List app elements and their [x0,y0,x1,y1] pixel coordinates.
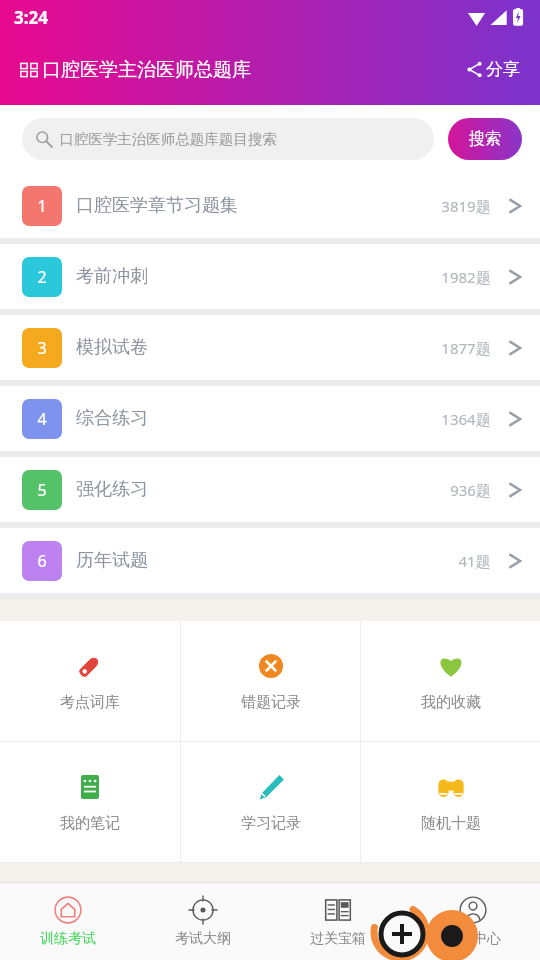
button[interactable]: 我的收藏 [361,621,540,741]
button[interactable]: 错题记录 [181,621,360,741]
button[interactable]: 3 [0,315,540,380]
staticText: 口腔医学主治医师总题库题目搜索 [59,130,277,148]
button[interactable]: 我的笔记 [0,742,180,862]
staticText: 1877题 [441,338,491,358]
staticText: 1982题 [441,267,491,287]
button[interactable]: 考点词库 [0,621,180,741]
staticText: 3:24 [14,6,48,29]
staticText: 错题记录 [241,693,301,712]
staticText: 训练考试 [40,930,96,948]
button[interactable]: 分享 [462,53,524,86]
staticText: 过关宝箱 [310,930,366,948]
button[interactable]: 6 [0,528,540,593]
staticText: 936题 [450,480,491,500]
staticText: 3 [37,337,47,359]
staticText: 4 [37,408,47,430]
staticText: 考前冲刺 [76,265,148,288]
staticText: 用户中心 [445,930,501,948]
button[interactable]: 1 [0,173,540,238]
button[interactable]: 随机十题 [361,742,540,862]
staticText: 6 [37,550,47,572]
other: 进入 [509,266,522,288]
button[interactable]: 5 [0,457,540,522]
other: 进入 [509,337,522,359]
button[interactable]: 用户中心 [405,883,540,960]
staticText: 模拟试卷 [76,336,148,359]
staticText: 口腔医学主治医师总题库 [42,58,251,82]
staticText: 学习记录 [241,814,301,833]
button[interactable]: 学习记录 [181,742,360,862]
staticText: 3819题 [441,196,491,216]
button[interactable]: 4 [0,386,540,451]
button[interactable]: 训练考试 [0,883,135,960]
staticText: 5 [37,479,47,501]
button[interactable]: 搜索 [448,118,522,160]
staticText: 考点词库 [60,693,120,712]
staticText: 历年试题 [76,549,148,572]
other: 进入 [509,408,522,430]
staticText: 口腔医学章节习题集 [76,194,238,217]
staticText: 我的笔记 [60,814,120,833]
other: 进入 [509,479,522,501]
staticText: 考试大纲 [175,930,231,948]
staticText: 随机十题 [421,814,481,833]
staticText: 强化练习 [76,478,148,501]
staticText: 搜索 [469,129,501,149]
staticText: 我的收藏 [421,693,481,712]
staticText: 1364题 [441,409,491,429]
staticText: 41题 [458,551,491,571]
staticText: 1 [37,195,47,217]
staticText: 2 [37,266,47,288]
button[interactable]: 过关宝箱 [270,883,405,960]
staticText: 分享 [486,59,520,80]
button[interactable]: 考试大纲 [135,883,270,960]
other: 进入 [509,550,522,572]
button[interactable]: 2 [0,244,540,309]
other: 进入 [509,195,522,217]
button[interactable]: 口腔医学主治医师总题库题目搜索 [22,118,434,160]
staticText: 综合练习 [76,407,148,430]
